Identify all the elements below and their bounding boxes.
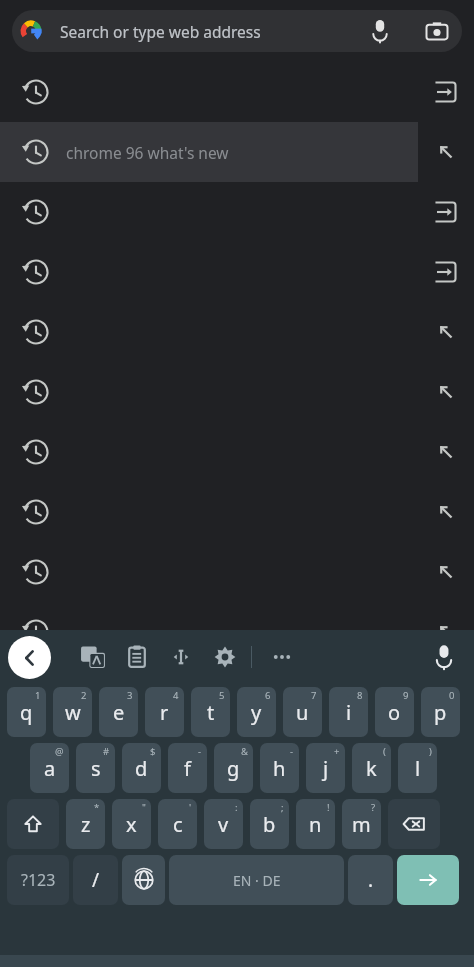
- staticText: *: [94, 801, 100, 814]
- staticText: g: [227, 755, 240, 782]
- button[interactable]: n: [296, 799, 335, 849]
- staticText: !: [327, 801, 330, 814]
- staticText: e: [113, 699, 125, 726]
- staticText: v: [218, 811, 229, 838]
- staticText: 8: [357, 689, 363, 702]
- staticText: ?: [371, 801, 376, 814]
- button[interactable]: EN · DE: [169, 855, 344, 905]
- staticText: b: [263, 811, 276, 838]
- staticText: k: [366, 755, 377, 782]
- button[interactable]: Translate: [71, 635, 115, 679]
- button[interactable]: Change language: [122, 855, 165, 905]
- staticText: ": [142, 801, 146, 814]
- staticText: x: [126, 811, 137, 838]
- button[interactable]: [0, 542, 474, 602]
- staticText: (: [383, 745, 386, 758]
- staticText: .: [368, 867, 374, 893]
- button[interactable]: f: [168, 743, 207, 793]
- staticText: u: [296, 699, 309, 726]
- staticText: ?123: [21, 869, 56, 891]
- button[interactable]: [0, 62, 474, 122]
- button[interactable]: Voice input: [422, 635, 466, 679]
- button[interactable]: i: [329, 687, 368, 737]
- staticText: c: [173, 811, 183, 838]
- staticText: -: [290, 745, 294, 758]
- staticText: &: [241, 745, 248, 758]
- button[interactable]: l: [398, 743, 437, 793]
- staticText: ': [189, 801, 192, 814]
- button[interactable]: [0, 362, 474, 422]
- button[interactable]: Clipboard: [115, 635, 159, 679]
- button[interactable]: m: [342, 799, 381, 849]
- staticText: p: [434, 699, 447, 726]
- staticText: l: [415, 755, 421, 782]
- button[interactable]: u: [283, 687, 322, 737]
- button[interactable]: o: [375, 687, 414, 737]
- staticText: y: [251, 699, 262, 726]
- staticText: 2: [81, 689, 87, 702]
- staticText: m: [352, 811, 371, 838]
- button[interactable]: Settings: [203, 635, 247, 679]
- staticText: f: [184, 755, 191, 782]
- button[interactable]: /: [73, 855, 118, 905]
- button[interactable]: y: [237, 687, 276, 737]
- button[interactable]: [0, 422, 474, 482]
- button[interactable]: r: [145, 687, 184, 737]
- button[interactable]: Text editing: [159, 635, 203, 679]
- staticText: /: [92, 867, 100, 893]
- staticText: chrome 96 what's new: [66, 142, 229, 163]
- button[interactable]: b: [250, 799, 289, 849]
- button[interactable]: k: [352, 743, 391, 793]
- staticText: 9: [403, 689, 409, 702]
- button[interactable]: a: [30, 743, 69, 793]
- staticText: $: [150, 745, 156, 758]
- staticText: -: [198, 745, 202, 758]
- button[interactable]: j: [306, 743, 345, 793]
- button[interactable]: Search or type web address: [12, 10, 462, 52]
- button[interactable]: [0, 602, 474, 662]
- staticText: 6: [265, 689, 271, 702]
- staticText: d: [135, 755, 148, 782]
- button[interactable]: Shift: [7, 799, 59, 849]
- button[interactable]: Back: [8, 636, 51, 679]
- button[interactable]: v: [204, 799, 243, 849]
- button[interactable]: t: [191, 687, 230, 737]
- button[interactable]: p: [421, 687, 460, 737]
- button[interactable]: Go: [397, 855, 459, 905]
- staticText: w: [65, 699, 81, 726]
- staticText: o: [388, 699, 401, 726]
- staticText: 1: [35, 689, 41, 702]
- button[interactable]: ?123: [7, 855, 69, 905]
- button[interactable]: w: [53, 687, 92, 737]
- button[interactable]: q: [7, 687, 46, 737]
- button[interactable]: [0, 302, 474, 362]
- button[interactable]: d: [122, 743, 161, 793]
- staticText: #: [103, 745, 110, 758]
- staticText: n: [309, 811, 322, 838]
- button[interactable]: z: [66, 799, 105, 849]
- button[interactable]: More options: [260, 635, 304, 679]
- button[interactable]: [0, 182, 474, 242]
- staticText: 0: [449, 689, 455, 702]
- staticText: :: [235, 801, 238, 814]
- staticText: 7: [311, 689, 317, 702]
- button[interactable]: h: [260, 743, 299, 793]
- button[interactable]: [0, 242, 474, 302]
- staticText: +: [334, 745, 340, 758]
- button[interactable]: .: [348, 855, 393, 905]
- button[interactable]: e: [99, 687, 138, 737]
- button[interactable]: g: [214, 743, 253, 793]
- button[interactable]: [0, 482, 474, 542]
- staticText: 4: [173, 689, 179, 702]
- staticText: i: [346, 699, 352, 726]
- staticText: q: [20, 699, 33, 726]
- staticText: z: [81, 811, 91, 838]
- button[interactable]: x: [112, 799, 151, 849]
- button[interactable]: Backspace: [388, 799, 440, 849]
- button[interactable]: c: [158, 799, 197, 849]
- button[interactable]: s: [76, 743, 115, 793]
- button[interactable]: chrome 96 what's new: [0, 122, 474, 182]
- staticText: @: [55, 745, 64, 758]
- staticText: EN · DE: [233, 871, 281, 890]
- staticText: 5: [219, 689, 225, 702]
